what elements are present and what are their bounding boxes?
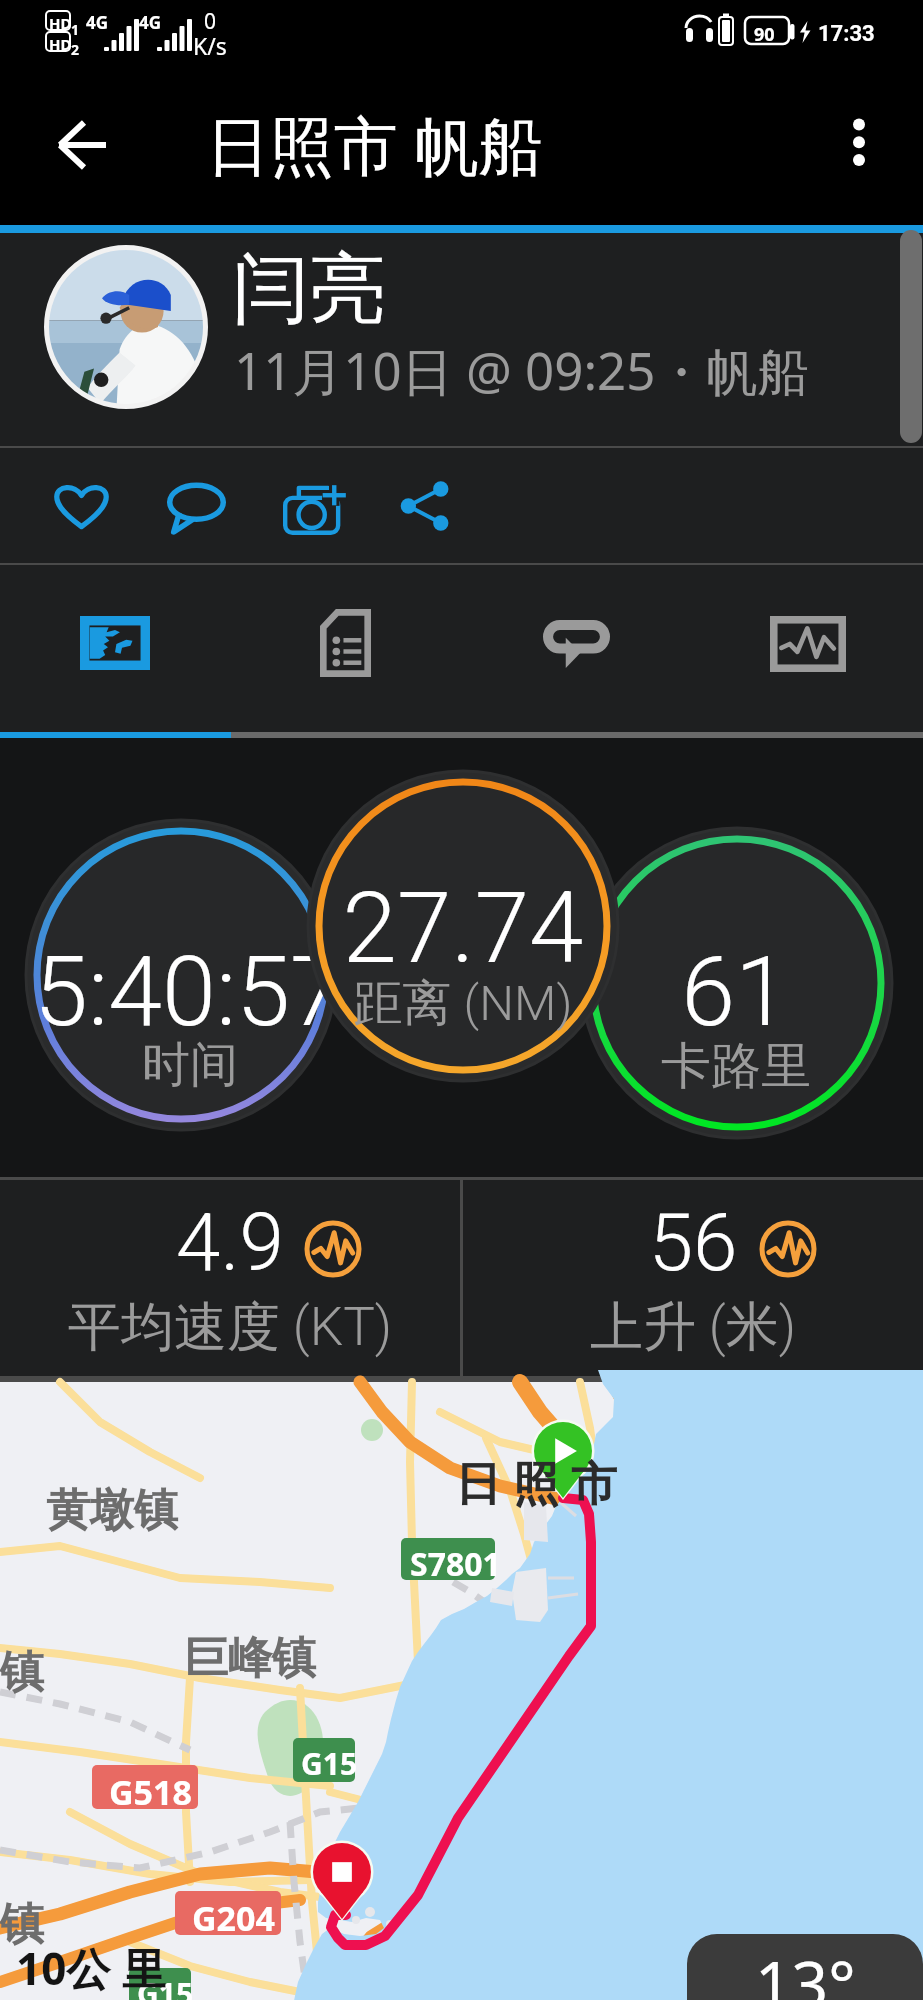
staticText: 10公 里 [16,1938,166,1998]
staticText: 4G [86,11,109,34]
staticText: 56 [463,1196,923,1290]
staticText: 90 [754,22,775,47]
staticText: 2 [71,40,80,59]
button[interactable]: Comment [150,460,242,552]
button[interactable]: Back [32,96,129,193]
button[interactable]: Share [381,460,473,552]
staticText: 日 照 市 [455,1451,617,1514]
staticText: 镇 [0,1645,44,1700]
staticText: 4.9 [0,1196,460,1290]
staticText: 平均速度 (KT) [0,1294,460,1361]
staticText: 13° [755,1940,856,2000]
button[interactable]: 56 [463,1180,923,1376]
staticText: G15 [137,1973,194,2000]
staticText: 17:33 [818,21,875,47]
button[interactable]: Laps [461,565,692,732]
staticText: 1 [71,20,80,39]
staticText: 时间 [0,1035,540,1095]
staticText: G204 [192,1895,275,1941]
staticText: 上升 (米) [463,1294,923,1361]
staticText: 距离 (NM) [113,973,813,1035]
staticText: 27.74 [113,871,813,986]
button[interactable]: More options [813,96,905,188]
staticText: 日照市 帆船 [206,101,543,188]
staticText: 11月10日 @ 09:25・帆船 [234,335,809,405]
button[interactable]: Add photo [267,462,359,554]
button[interactable]: 黄墩镇 [0,1382,923,2000]
button[interactable]: 4.9 [0,1180,460,1376]
staticText: HD [49,13,72,33]
staticText: 0 [204,7,217,36]
staticText: 镇 [0,1897,44,1952]
staticText: 61 [385,935,923,1049]
staticText: HD [49,34,72,54]
staticText: S7801 [410,1542,501,1586]
staticText: G518 [109,1769,192,1815]
staticText: G15 [301,1743,358,1784]
button[interactable]: Details [230,565,461,732]
staticText: 黄墩镇 [46,1483,178,1538]
staticText: K/s [193,30,227,61]
staticText: 卡路里 [386,1035,923,1098]
button[interactable]: 13° [687,1934,923,2000]
button[interactable]: Like [35,460,127,552]
button[interactable]: Map [0,565,230,732]
staticText: 5:40:57 [0,935,539,1049]
staticText: 闫亮 [232,241,386,338]
staticText: 4G [139,11,162,34]
button[interactable]: Graphs [692,565,923,732]
staticText: 巨峰镇 [184,1631,316,1686]
